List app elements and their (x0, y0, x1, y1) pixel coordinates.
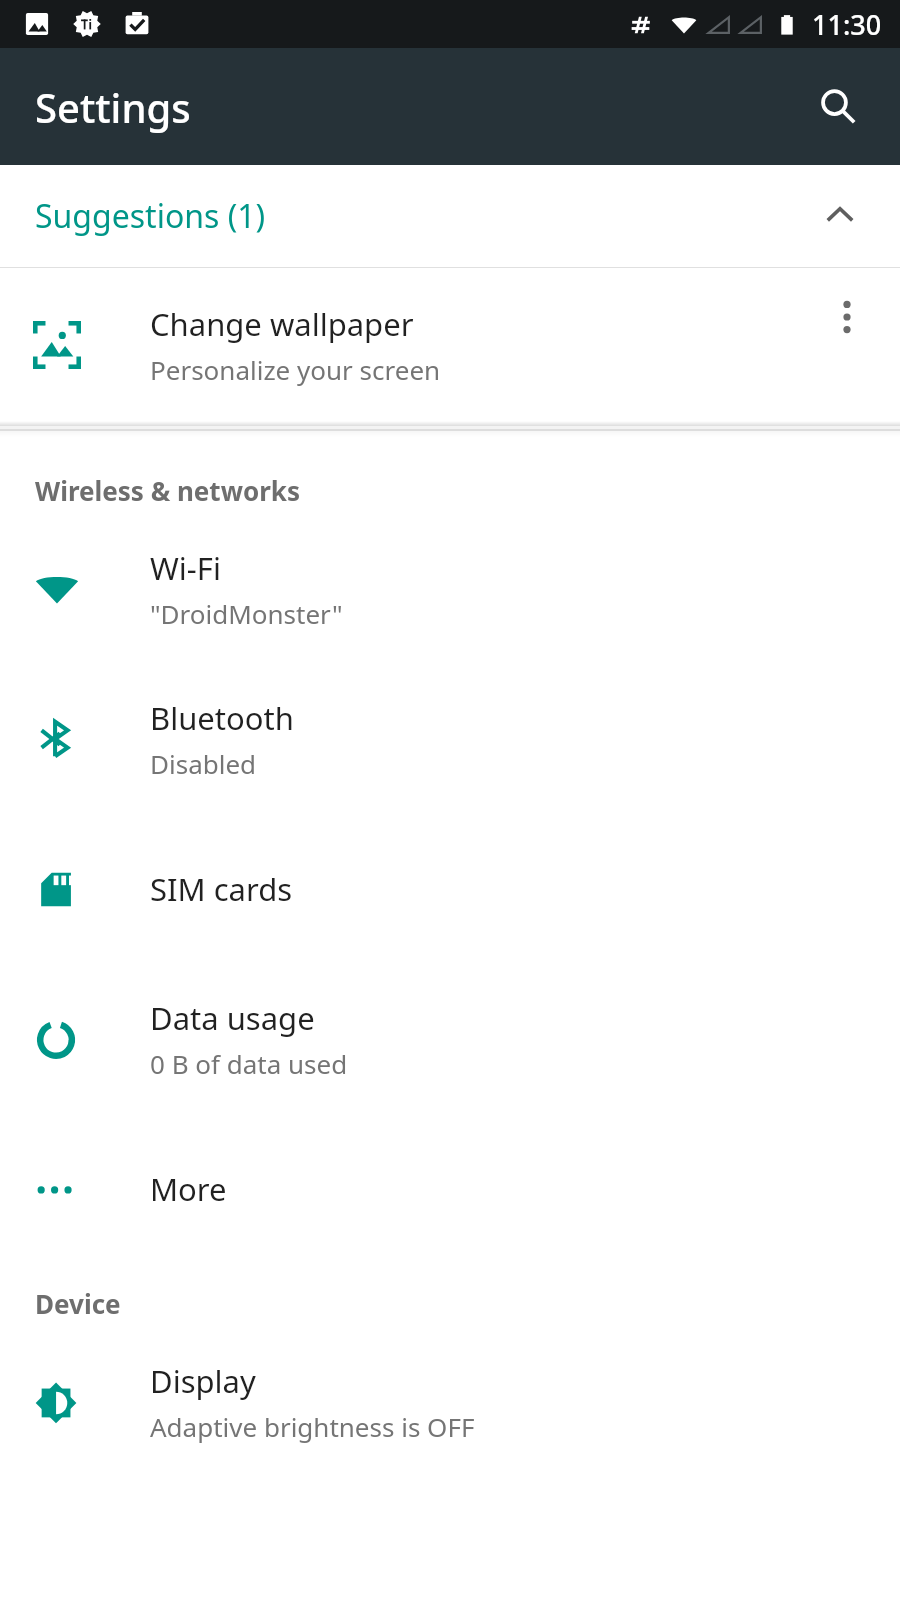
button[interactable]: SIM cards (0, 814, 900, 964)
button[interactable]: Data usage (0, 964, 900, 1114)
staticText: Disabled (150, 746, 257, 781)
staticText: Wireless & networks (35, 473, 300, 508)
button[interactable]: Wi-Fi (0, 514, 900, 664)
staticText: Device (35, 1286, 121, 1321)
staticText: Personalize your screen (150, 352, 441, 387)
staticText: Settings (35, 80, 191, 134)
staticText: SIM cards (150, 868, 293, 910)
staticText: Change wallpaper (150, 303, 414, 345)
button[interactable]: Bluetooth (0, 664, 900, 814)
staticText: More (150, 1168, 227, 1210)
button[interactable]: Suggestions (1) (0, 165, 900, 267)
staticText: Display (150, 1360, 256, 1402)
button[interactable]: More (0, 1114, 900, 1264)
button[interactable]: Change wallpaper (0, 268, 900, 421)
button[interactable]: More options (816, 286, 878, 348)
staticText: Wi-Fi (150, 547, 221, 589)
staticText: 0 B of data used (150, 1046, 348, 1081)
staticText: 11:30 (812, 6, 882, 43)
staticText: Data usage (150, 997, 315, 1039)
staticText: Adaptive brightness is OFF (150, 1409, 475, 1444)
staticText: "DroidMonster" (150, 596, 343, 631)
staticText: Suggestions (1) (35, 194, 266, 238)
button[interactable]: Display (0, 1327, 900, 1477)
staticText: Bluetooth (150, 697, 294, 739)
button[interactable]: Search (800, 69, 876, 145)
